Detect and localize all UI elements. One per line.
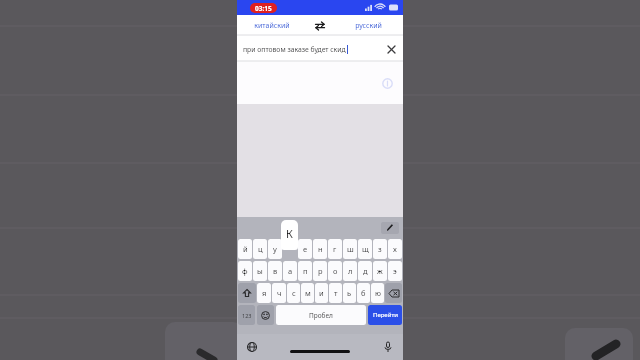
button[interactable]: г (328, 239, 342, 259)
button[interactable]: ц (253, 239, 267, 259)
staticText: о (333, 266, 338, 276)
button[interactable]: я (257, 283, 271, 303)
staticText: 03:15 (255, 4, 272, 13)
button[interactable]: з (373, 239, 387, 259)
staticText: ч (277, 288, 282, 298)
staticText: ш (347, 244, 354, 254)
staticText: ц (258, 244, 263, 254)
staticText: К (286, 226, 293, 241)
staticText: ю (375, 288, 381, 298)
staticText: х (393, 244, 397, 254)
staticText: п (303, 266, 308, 276)
button[interactable]: э (388, 261, 402, 281)
button[interactable]: русский (333, 15, 403, 36)
button[interactable]: х (388, 239, 402, 259)
button[interactable]: р (313, 261, 327, 281)
button[interactable]: Voice input (381, 340, 395, 354)
staticText: китайский (254, 21, 290, 31)
button[interactable]: п (298, 261, 312, 281)
button[interactable]: й (238, 239, 252, 259)
staticText: а (288, 266, 293, 276)
button[interactable]: Swap languages (307, 15, 333, 36)
staticText: л (348, 266, 353, 276)
staticText: я (262, 288, 267, 298)
button[interactable]: о (328, 261, 342, 281)
staticText: в (273, 266, 278, 276)
staticText: э (393, 266, 397, 276)
staticText: с (292, 288, 296, 298)
button[interactable]: б (357, 283, 370, 303)
staticText: при оптовом заказе будет скид (243, 45, 346, 54)
staticText: г (333, 244, 337, 254)
staticText: щ (362, 244, 369, 254)
button[interactable]: Emoji (257, 305, 274, 325)
button[interactable]: щ (358, 239, 372, 259)
button[interactable]: м (301, 283, 314, 303)
staticText: р (318, 266, 323, 276)
staticText: 123 (242, 312, 252, 319)
button[interactable]: е (298, 239, 312, 259)
staticText: е (303, 244, 308, 254)
button[interactable]: в (268, 261, 282, 281)
staticText: русский (355, 21, 382, 31)
staticText: ф (242, 266, 248, 276)
staticText: ж (377, 266, 383, 276)
button[interactable]: Пробел (276, 305, 366, 325)
button[interactable]: у (268, 239, 282, 259)
button[interactable]: Backspace (385, 283, 402, 303)
button[interactable]: ю (371, 283, 384, 303)
button[interactable]: и (315, 283, 328, 303)
staticText: т (334, 288, 338, 298)
button[interactable]: 123 (238, 305, 255, 325)
button[interactable]: т (329, 283, 342, 303)
button[interactable]: л (343, 261, 357, 281)
button[interactable]: ф (238, 261, 252, 281)
button[interactable]: ж (373, 261, 387, 281)
staticText: Пробел (309, 311, 333, 320)
staticText: й (243, 244, 248, 254)
staticText: н (318, 244, 323, 254)
staticText: д (363, 266, 368, 276)
button[interactable]: д (358, 261, 372, 281)
button[interactable]: Handwriting input (381, 222, 399, 234)
staticText: ы (257, 266, 263, 276)
staticText: у (273, 244, 277, 254)
button[interactable]: с (287, 283, 300, 303)
staticText: ь (347, 288, 352, 298)
button[interactable]: ы (253, 261, 267, 281)
button[interactable]: н (313, 239, 327, 259)
button[interactable]: ш (343, 239, 357, 259)
button[interactable]: а (283, 261, 297, 281)
button[interactable]: китайский (237, 15, 307, 36)
staticText: м (305, 288, 311, 298)
staticText: Перейти (373, 311, 398, 319)
staticText: б (361, 288, 366, 298)
button[interactable]: Change keyboard language (245, 340, 259, 354)
button[interactable]: Clear text (383, 41, 399, 57)
button[interactable]: Перейти (368, 305, 402, 325)
button[interactable]: ь (343, 283, 356, 303)
button[interactable]: Shift (238, 283, 256, 303)
button[interactable]: ч (272, 283, 286, 303)
staticText: и (319, 288, 324, 298)
staticText: з (378, 244, 382, 254)
